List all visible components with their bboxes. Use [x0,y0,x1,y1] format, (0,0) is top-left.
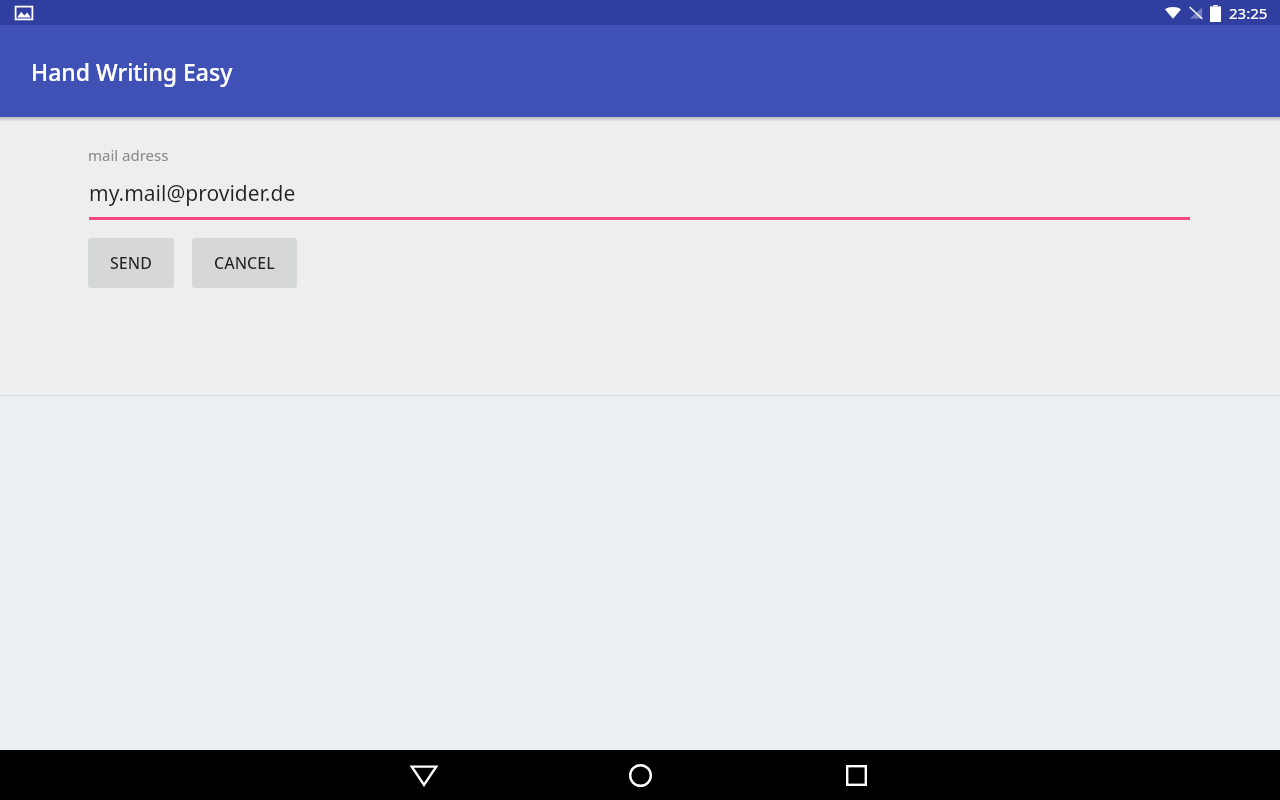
staticText: mail adress [88,145,169,165]
button[interactable]: Home [604,757,676,793]
button[interactable]: 7 [736,775,848,800]
staticText: SEND [110,252,152,274]
button[interactable]: SEND [88,238,174,288]
staticText: 23:25 [1229,3,1268,23]
button[interactable]: CANCEL [192,238,297,288]
button[interactable]: 4 [391,775,503,800]
staticText: Hand Writing Easy [31,56,233,87]
button[interactable]: 8 [851,775,963,800]
staticText: my.mail@provider.de [89,179,296,208]
button[interactable]: 6 [621,775,733,800]
staticText: CANCEL [214,252,275,274]
button[interactable]: Recent apps [820,757,892,793]
button[interactable]: Back [388,757,460,793]
